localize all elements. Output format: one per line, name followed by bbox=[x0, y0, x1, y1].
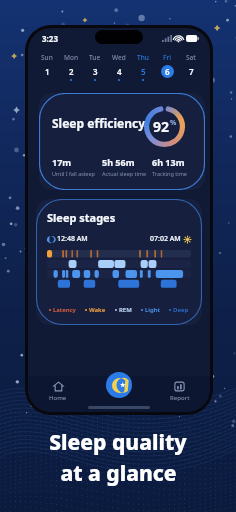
staticText: Actual sleep time bbox=[102, 170, 147, 177]
staticText: 3:23 bbox=[42, 33, 58, 44]
staticText: Sleep quality bbox=[49, 428, 187, 457]
staticText: Sun bbox=[41, 53, 53, 62]
staticText: Fri bbox=[163, 53, 171, 62]
staticText: 1 bbox=[45, 66, 50, 77]
staticText: 6 bbox=[165, 66, 170, 77]
staticText: Tue bbox=[89, 53, 101, 62]
staticText: Latency bbox=[53, 306, 76, 314]
staticText: 17m bbox=[52, 156, 72, 168]
button[interactable]: Home bbox=[28, 381, 88, 402]
staticText: 92 bbox=[153, 117, 170, 136]
staticText: at a glance bbox=[60, 459, 177, 488]
staticText: 4 bbox=[117, 66, 122, 77]
button[interactable]: Sat bbox=[179, 51, 203, 83]
staticText: Tracking time bbox=[152, 170, 187, 177]
staticText: Sleep stages bbox=[47, 210, 116, 225]
staticText: Until I fall asleep bbox=[52, 170, 95, 177]
button[interactable]: Wed bbox=[107, 51, 131, 83]
staticText: 5h 56m bbox=[102, 156, 135, 168]
staticText: 7 bbox=[189, 66, 194, 77]
staticText: Report bbox=[170, 394, 190, 402]
button[interactable]: Start sleep tracking bbox=[106, 372, 132, 398]
button[interactable]: Tue bbox=[83, 51, 107, 83]
staticText: Deep bbox=[173, 306, 189, 314]
staticText: Wed bbox=[112, 53, 126, 62]
staticText: 5 bbox=[141, 66, 146, 77]
staticText: Wake bbox=[89, 306, 106, 314]
staticText: REM bbox=[119, 306, 132, 314]
staticText: 2 bbox=[69, 66, 74, 77]
staticText: Mon bbox=[64, 53, 79, 62]
staticText: Home bbox=[49, 394, 67, 402]
staticText: Sat bbox=[186, 53, 196, 62]
staticText: Light bbox=[145, 306, 160, 314]
staticText: 3 bbox=[93, 66, 98, 77]
staticText: 07:02 AM bbox=[150, 234, 181, 244]
staticText: 12:48 AM bbox=[57, 234, 88, 244]
button[interactable]: Sleep efficiency bbox=[39, 93, 205, 190]
button[interactable]: Mon bbox=[59, 51, 83, 83]
staticText: 6h 13m bbox=[152, 156, 185, 168]
button[interactable]: Sun bbox=[35, 51, 59, 83]
button[interactable]: Thu bbox=[131, 51, 155, 83]
staticText: % bbox=[170, 118, 177, 128]
button[interactable]: Report bbox=[149, 381, 210, 402]
staticText: Sleep efficiency bbox=[52, 115, 146, 131]
button[interactable]: Fri bbox=[155, 51, 179, 83]
button[interactable]: Sleep stages bbox=[36, 199, 202, 325]
staticText: Thu bbox=[137, 53, 149, 62]
